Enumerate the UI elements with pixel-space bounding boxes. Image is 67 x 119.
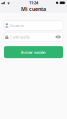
button[interactable]: Iniciar sesión [4,46,63,58]
staticText: Mi cuenta [21,5,46,13]
button[interactable]: Mi cuenta [21,5,46,13]
button[interactable]: Contraseña [4,32,63,42]
staticText: Contraseña [10,34,30,39]
button[interactable]: Mostrar contraseña [55,32,62,41]
button[interactable]: Usuario [4,21,63,30]
staticText: Iniciar sesión [21,49,46,55]
staticText: Usuario [10,23,24,28]
staticText: 11:24 [29,0,38,5]
